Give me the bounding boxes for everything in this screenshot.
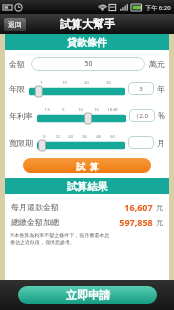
staticText: % — [158, 110, 165, 121]
staticText: 試算結果 — [67, 180, 107, 193]
staticText: 貸款條件 — [67, 36, 107, 49]
staticText: 立即申請 — [66, 288, 110, 302]
staticText: 16,607 — [124, 201, 153, 213]
staticText: 10 — [78, 107, 83, 112]
staticText: 萬元 — [149, 59, 165, 69]
staticText: 0 — [43, 134, 46, 139]
staticText: 10 — [62, 80, 67, 85]
staticText: 50 — [84, 59, 93, 69]
button[interactable]: |2.0 — [129, 109, 155, 122]
staticText: 總繳金額加總 — [11, 217, 59, 227]
staticText: ※本推算為利率不變之條件下，按月攤還本息 — [10, 232, 110, 239]
button[interactable]: 50 — [31, 57, 145, 71]
staticText: 1 — [40, 80, 43, 85]
button[interactable]: 試 算 — [23, 158, 151, 173]
staticText: 597,858 — [119, 216, 153, 228]
staticText: 試算大幫手 — [60, 17, 115, 31]
staticText: 月 — [157, 138, 165, 148]
staticText: 36 — [82, 134, 87, 139]
staticText: 18.48 — [107, 107, 118, 112]
staticText: |2.0 — [136, 112, 148, 120]
staticText: 元 — [156, 203, 163, 212]
staticText: 15 — [94, 107, 99, 112]
button[interactable] — [128, 136, 154, 149]
staticText: 年 — [157, 84, 165, 94]
button[interactable]: 立即申請 — [18, 286, 157, 304]
staticText: 1.5 — [44, 107, 50, 112]
staticText: 5 — [62, 107, 65, 112]
button[interactable]: 返回 — [4, 18, 26, 31]
staticText: 試 算 — [76, 160, 99, 172]
staticText: 金額 — [9, 59, 25, 69]
staticText: 60 — [110, 134, 115, 139]
button[interactable]: 年利率 — [37, 113, 126, 124]
button[interactable]: 3 — [128, 82, 154, 95]
staticText: 12 — [55, 134, 60, 139]
staticText: 3 — [139, 85, 143, 93]
staticText: 返回 — [8, 20, 22, 29]
staticText: 年利率 — [9, 111, 33, 121]
staticText: 寬限期 — [9, 138, 33, 148]
staticText: 30 — [106, 80, 111, 85]
staticText: 每月還款金額 — [11, 202, 59, 212]
staticText: 元 — [156, 218, 163, 227]
button[interactable]: 年限 — [29, 86, 125, 97]
staticText: 推估之近似值，僅供您參考。 — [10, 239, 75, 245]
staticText: 24 — [68, 134, 73, 139]
staticText: 48 — [96, 134, 101, 139]
staticText: 年限 — [9, 84, 25, 94]
staticText: 20 — [84, 80, 89, 85]
staticText: 下午 6:20 — [145, 4, 171, 12]
button[interactable]: 寬限期 — [37, 140, 125, 151]
